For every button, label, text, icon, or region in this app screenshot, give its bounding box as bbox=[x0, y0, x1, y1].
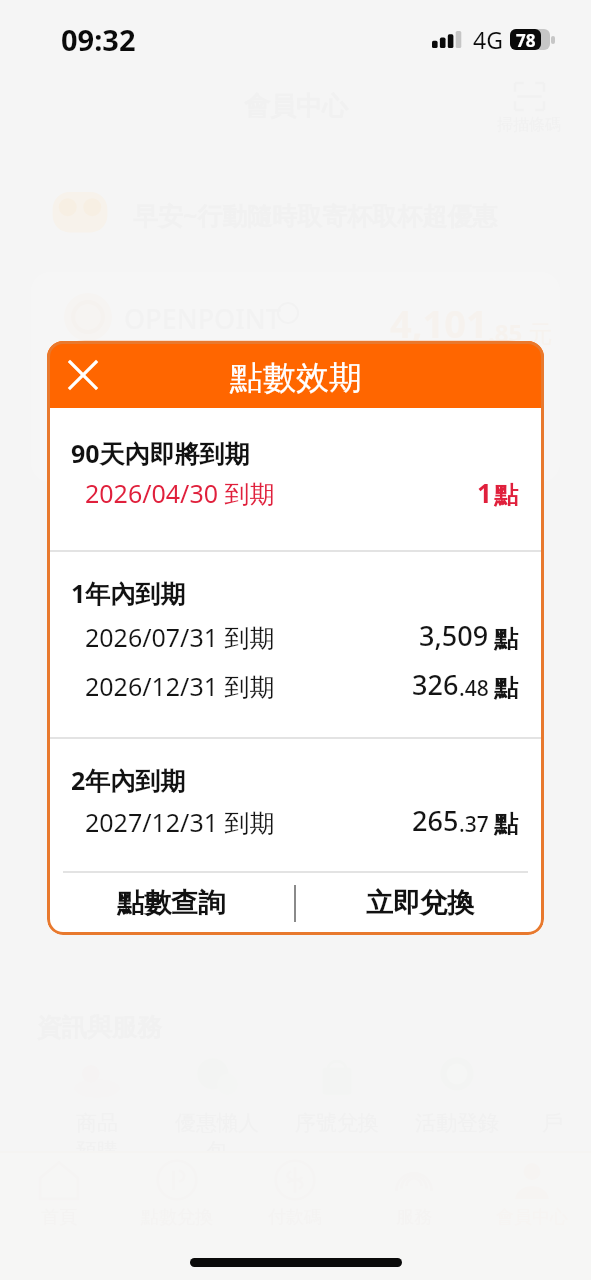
staticText: 立即兌換 bbox=[366, 886, 474, 920]
staticText: 2年內到期 bbox=[71, 763, 186, 797]
staticText: 元 bbox=[528, 319, 552, 349]
staticText: 1年內到期 bbox=[71, 576, 186, 610]
staticText: 1 bbox=[477, 475, 492, 510]
staticText: .37 bbox=[459, 810, 489, 839]
staticText: 點數效期 bbox=[230, 357, 362, 399]
button[interactable] bbox=[49, 340, 544, 412]
staticText: 265 bbox=[412, 802, 459, 839]
staticText: 點 bbox=[494, 624, 518, 654]
staticText: 4,101 bbox=[390, 297, 488, 349]
staticText: 09:32 bbox=[61, 20, 136, 59]
staticText: 點數查詢 bbox=[117, 886, 225, 920]
staticText: 2026/04/30 到期 bbox=[85, 476, 275, 510]
staticText: 點 bbox=[494, 480, 518, 510]
staticText: 3,509 bbox=[419, 617, 489, 654]
button[interactable]: 點數查詢 bbox=[47, 873, 294, 933]
staticText: 點 bbox=[494, 673, 518, 703]
staticText: .48 bbox=[459, 674, 489, 703]
staticText: 點 bbox=[494, 809, 518, 839]
staticText: 90天內即將到期 bbox=[71, 436, 250, 470]
staticText: 4G bbox=[473, 24, 503, 55]
staticText: 2026/12/31 到期 bbox=[85, 669, 275, 703]
staticText: 326 bbox=[412, 666, 459, 703]
staticText: 2026/07/31 到期 bbox=[85, 620, 275, 654]
button[interactable]: Close bbox=[56, 348, 110, 402]
staticText: 78 bbox=[516, 29, 536, 50]
staticText: 2027/12/31 到期 bbox=[85, 805, 275, 839]
button[interactable]: 立即兌換 bbox=[296, 873, 544, 933]
staticText: .85 bbox=[488, 316, 523, 349]
